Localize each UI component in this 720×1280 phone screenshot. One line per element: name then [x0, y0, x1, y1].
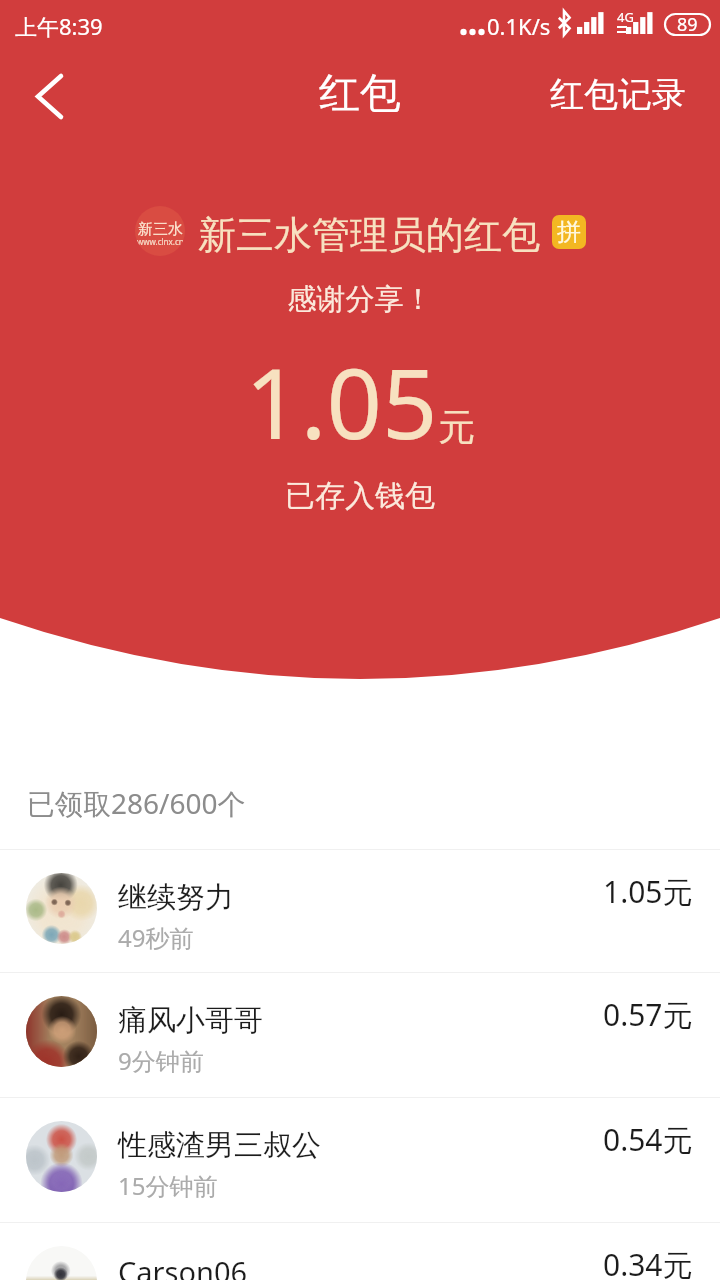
staticText: 拼 — [557, 217, 581, 247]
staticText: 已存入钱包 — [0, 477, 720, 515]
button[interactable]: Carson06 — [0, 1223, 720, 1280]
staticText: 0.34元 — [603, 1244, 693, 1280]
staticText: 痛风小哥哥 — [118, 1002, 263, 1039]
staticText: 15分钟前 — [118, 1169, 218, 1202]
staticText: 1.05 — [245, 335, 438, 467]
staticText: 新三水管理员的红包 — [198, 211, 540, 259]
button[interactable]: 性感渣男三叔公 — [0, 1098, 720, 1221]
staticText: 9分钟前 — [118, 1044, 204, 1077]
staticText: www.clnx.cn — [137, 236, 184, 247]
staticText: 已领取286/600个 — [27, 784, 246, 822]
staticText: 上午8:39 — [15, 11, 103, 41]
staticText: 1.05元 — [603, 871, 693, 912]
staticText: Carson06 — [118, 1252, 248, 1280]
staticText: 新三水 — [138, 220, 183, 239]
staticText: 继续努力 — [118, 879, 234, 916]
button[interactable]: 痛风小哥哥 — [0, 973, 720, 1096]
staticText: 红包记录 — [550, 73, 686, 116]
staticText: 89 — [677, 12, 698, 35]
staticText: 红包 — [319, 68, 401, 120]
staticText: 4G — [617, 8, 634, 26]
staticText: 49秒前 — [118, 921, 194, 954]
staticText: 0.1K/s — [487, 11, 551, 41]
staticText: 元 — [438, 404, 475, 451]
staticText: 性感渣男三叔公 — [118, 1127, 321, 1164]
staticText: 感谢分享！ — [0, 281, 720, 318]
staticText: 0.57元 — [603, 994, 693, 1035]
button[interactable]: 继续努力 — [0, 850, 720, 973]
button[interactable]: Back — [8, 52, 88, 144]
staticText: 0.54元 — [603, 1119, 693, 1160]
button[interactable]: 红包记录 — [526, 52, 720, 144]
